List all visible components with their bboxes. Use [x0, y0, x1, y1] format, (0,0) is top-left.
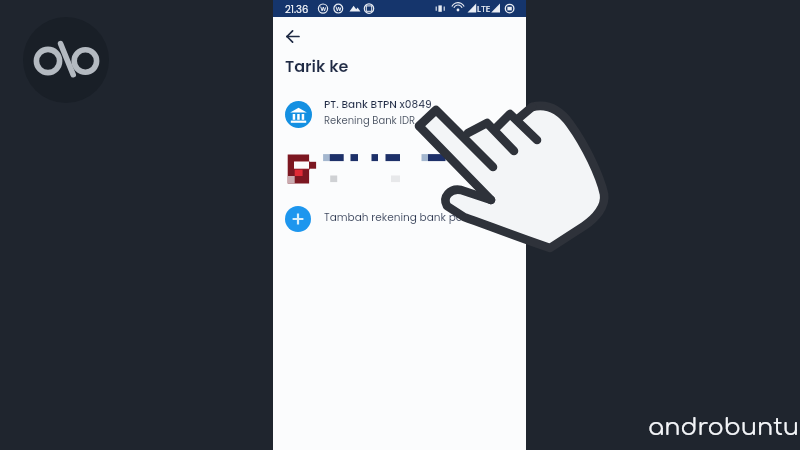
staticText: 21.36: [285, 2, 309, 16]
button[interactable]: Back: [281, 25, 305, 49]
button[interactable]: Tambah rekening bank pe: [273, 204, 526, 234]
staticText: Tarik ke: [285, 55, 349, 77]
staticText: androbuntu: [648, 414, 800, 441]
staticText: Tambah rekening bank pe: [324, 210, 463, 225]
button[interactable]: [273, 148, 526, 188]
staticText: PT. Bank BTPN x0849: [324, 97, 432, 112]
staticText: LTE: [477, 3, 491, 16]
button[interactable]: PT. Bank BTPN x0849: [273, 96, 526, 133]
staticText: Rekening Bank IDR: [324, 113, 416, 127]
